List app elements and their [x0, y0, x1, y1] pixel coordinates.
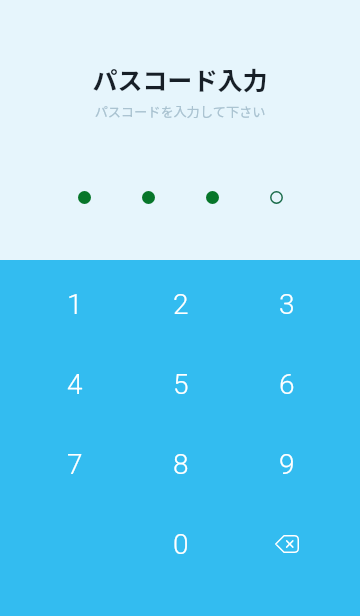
button[interactable]: 4: [22, 344, 128, 424]
button[interactable]: 2: [128, 264, 234, 344]
staticText: パスコード入力: [92, 61, 268, 97]
staticText: パスコードを入力して下さい: [94, 102, 266, 121]
button[interactable]: 5: [128, 344, 234, 424]
staticText: 0: [173, 528, 189, 561]
staticText: 2: [173, 288, 189, 321]
button[interactable]: 1: [22, 264, 128, 344]
staticText: 8: [173, 448, 189, 481]
staticText: 5: [173, 368, 189, 401]
button[interactable]: 3: [234, 264, 340, 344]
staticText: 7: [67, 448, 83, 481]
button[interactable]: Backspace: [234, 504, 340, 584]
staticText: 3: [279, 288, 295, 321]
staticText: 1: [67, 288, 83, 321]
staticText: 9: [279, 448, 295, 481]
button[interactable]: 7: [22, 424, 128, 504]
button[interactable]: 0: [128, 504, 234, 584]
staticText: 6: [279, 368, 295, 401]
staticText: 4: [67, 368, 83, 401]
button[interactable]: 8: [128, 424, 234, 504]
button[interactable]: 6: [234, 344, 340, 424]
button[interactable]: 9: [234, 424, 340, 504]
